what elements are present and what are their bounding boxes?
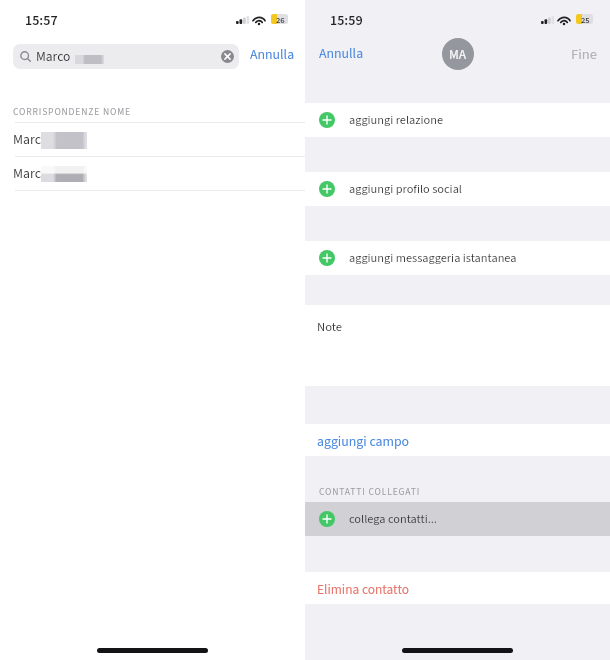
staticText: Annulla <box>250 45 295 65</box>
button[interactable]: aggiungi messaggeria istantanea <box>305 241 610 275</box>
button[interactable]: aggiungi campo <box>305 424 610 456</box>
button[interactable]: collega contatti... <box>305 502 610 536</box>
staticText: 15:59 <box>330 11 363 31</box>
staticText: aggiungi relazione <box>349 111 444 129</box>
staticText: CORRISPONDENZE NOME <box>13 105 131 119</box>
button[interactable]: Marc <box>0 157 305 190</box>
button[interactable]: Elimina contatto <box>305 572 610 604</box>
staticText: aggiungi campo <box>317 432 410 452</box>
staticText: CONTATTI COLLEGATI <box>319 485 421 499</box>
staticText: 25 <box>581 14 590 24</box>
button[interactable]: Marco <box>13 44 239 69</box>
other: Clear search <box>221 50 234 63</box>
staticText: 15:57 <box>25 11 58 31</box>
staticText: 26 <box>276 14 285 24</box>
staticText: aggiungi profilo social <box>349 180 462 198</box>
staticText: Marc <box>13 164 41 184</box>
staticText: aggiungi messaggeria istantanea <box>349 249 517 267</box>
button[interactable]: Annulla <box>317 43 366 65</box>
staticText: Fine <box>571 44 597 65</box>
staticText: Annulla <box>319 44 364 64</box>
button[interactable]: MA <box>442 38 474 70</box>
staticText: collega contatti... <box>349 510 437 528</box>
staticText: Elimina contatto <box>317 580 409 599</box>
button[interactable]: Marc <box>0 123 305 157</box>
button[interactable]: aggiungi relazione <box>305 103 610 137</box>
staticText: MA <box>449 45 467 64</box>
staticText: Marc <box>13 130 41 150</box>
button[interactable]: Annulla <box>248 44 297 66</box>
button[interactable]: aggiungi profilo social <box>305 172 610 206</box>
staticText: Marco <box>36 47 71 66</box>
button[interactable]: Note <box>305 305 610 386</box>
staticText: Note <box>317 318 343 336</box>
button[interactable]: Fine <box>569 43 599 66</box>
